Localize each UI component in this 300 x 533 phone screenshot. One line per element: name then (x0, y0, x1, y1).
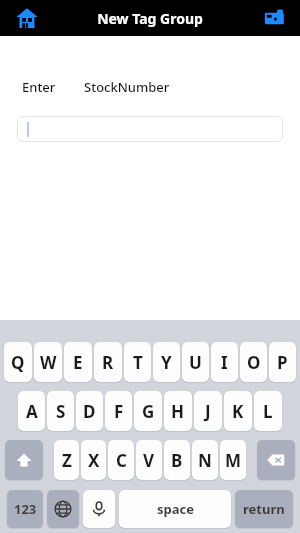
button[interactable]: Home (12, 3, 42, 33)
button[interactable] (17, 116, 283, 142)
button[interactable]: Shift (5, 440, 43, 480)
staticText: K (232, 400, 244, 423)
staticText: 123 (14, 500, 37, 518)
staticText: E (73, 351, 83, 374)
staticText: I (221, 351, 228, 374)
button[interactable]: P (269, 342, 296, 382)
staticText: U (189, 351, 202, 374)
button[interactable]: Q (4, 342, 32, 382)
staticText: G (142, 400, 155, 423)
staticText: T (133, 351, 143, 374)
staticText: D (83, 400, 96, 423)
button[interactable]: 123 (7, 490, 43, 528)
staticText: H (171, 400, 185, 423)
staticText: O (247, 351, 261, 374)
staticText: R (102, 351, 114, 374)
button[interactable]: Z (54, 440, 79, 480)
staticText: F (114, 400, 124, 423)
staticText: J (205, 400, 211, 423)
staticText: A (26, 400, 38, 423)
staticText: V (143, 449, 155, 472)
button[interactable]: Voice input (83, 490, 115, 528)
button[interactable]: F (105, 391, 132, 431)
staticText: W (40, 351, 57, 374)
button[interactable]: B (164, 440, 190, 480)
staticText: Z (62, 449, 72, 472)
button[interactable]: R (94, 342, 122, 382)
button[interactable]: H (164, 391, 192, 431)
staticText: return (243, 500, 285, 518)
button[interactable]: E (64, 342, 92, 382)
button[interactable]: space (119, 490, 231, 528)
staticText: StockNumber (84, 78, 170, 96)
button[interactable]: L (254, 391, 282, 431)
staticText: S (56, 400, 66, 423)
staticText: M (225, 449, 242, 472)
button[interactable]: Switch keyboard (47, 490, 79, 528)
button[interactable]: W (34, 342, 62, 382)
button[interactable]: J (194, 391, 222, 431)
button[interactable]: U (182, 342, 209, 382)
button[interactable]: A (18, 391, 45, 431)
button[interactable]: V (136, 440, 162, 480)
button[interactable]: D (76, 391, 103, 431)
button[interactable]: S (47, 391, 74, 431)
button[interactable]: G (134, 391, 162, 431)
staticText: space (157, 500, 194, 518)
button[interactable]: I (211, 342, 238, 382)
staticText: L (263, 400, 273, 423)
button[interactable]: N (192, 440, 218, 480)
button[interactable]: Backspace (257, 440, 295, 480)
staticText: N (198, 449, 212, 472)
button[interactable]: X (81, 440, 106, 480)
staticText: Enter (22, 78, 56, 96)
staticText: C (116, 449, 127, 472)
staticText: P (277, 351, 288, 374)
button[interactable]: Camera (260, 3, 290, 33)
button[interactable]: O (240, 342, 267, 382)
staticText: X (88, 449, 100, 472)
button[interactable]: C (108, 440, 134, 480)
button[interactable]: Y (153, 342, 180, 382)
button[interactable]: return (235, 490, 293, 528)
staticText: Y (161, 351, 172, 374)
button[interactable]: K (224, 391, 252, 431)
button[interactable]: T (124, 342, 151, 382)
staticText: B (171, 449, 183, 472)
staticText: New Tag Group (97, 9, 203, 28)
staticText: Q (11, 351, 25, 374)
button[interactable]: M (220, 440, 246, 480)
